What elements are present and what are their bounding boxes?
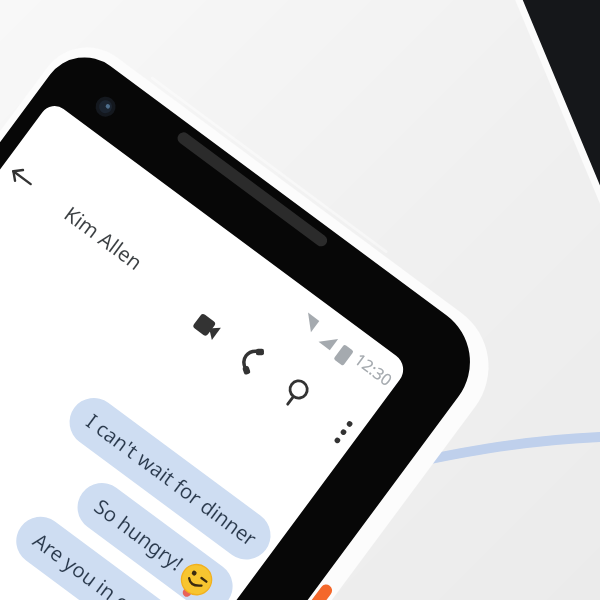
button[interactable]: Messaging conversation with Kim Allen (0, 0, 600, 600)
